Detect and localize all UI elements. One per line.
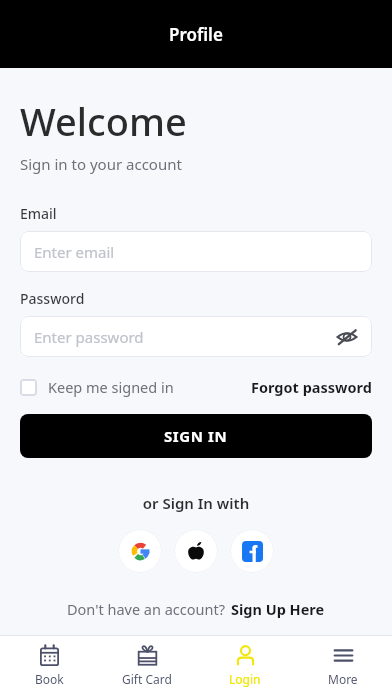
button[interactable]: Gift Card: [98, 635, 196, 696]
button[interactable]: Forgot password: [251, 373, 372, 401]
button[interactable]: SIGN IN: [20, 414, 372, 458]
staticText: Enter email: [34, 242, 115, 262]
button[interactable]: Sign in with Apple: [174, 529, 218, 573]
button[interactable]: Book: [0, 635, 98, 696]
button[interactable]: Sign in with Facebook: [230, 529, 274, 573]
staticText: Email: [20, 204, 57, 223]
staticText: Sign Up Here: [231, 599, 325, 619]
button[interactable]: Show password: [335, 325, 359, 349]
staticText: Profile: [169, 23, 223, 46]
staticText: Don't have an account?: [67, 599, 225, 619]
button[interactable]: Enter email: [20, 231, 372, 272]
staticText: Enter password: [34, 327, 144, 347]
staticText: Sign in to your account: [20, 154, 182, 174]
button[interactable]: Login: [196, 635, 294, 696]
staticText: Gift Card: [122, 671, 172, 687]
staticText: or Sign In with: [20, 493, 372, 513]
staticText: Welcome: [20, 95, 187, 147]
staticText: SIGN IN: [164, 426, 228, 446]
staticText: Keep me signed in: [48, 377, 174, 397]
button[interactable]: More: [294, 635, 392, 696]
button[interactable]: Keep me signed in: [20, 373, 174, 401]
staticText: More: [328, 671, 358, 687]
staticText: Book: [35, 671, 64, 687]
button[interactable]: Enter password: [20, 316, 372, 357]
staticText: Forgot password: [251, 377, 372, 397]
button[interactable]: Sign in with Google: [118, 529, 162, 573]
button[interactable]: Sign Up Here: [231, 599, 325, 619]
staticText: Login: [229, 671, 261, 687]
staticText: Password: [20, 289, 85, 308]
